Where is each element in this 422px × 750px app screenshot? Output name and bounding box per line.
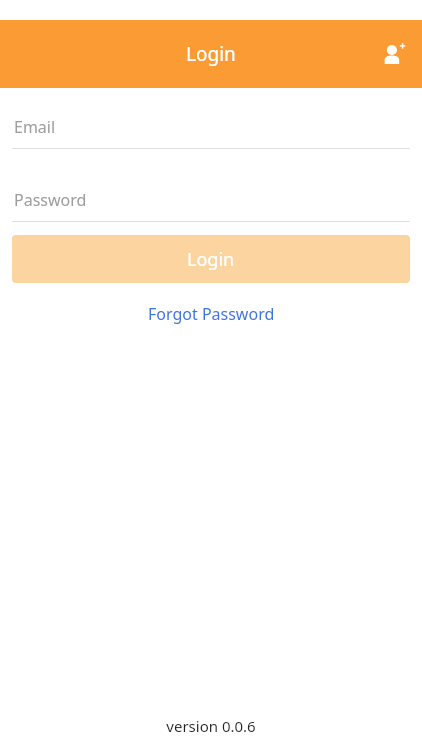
staticText: Login: [187, 247, 235, 272]
button[interactable]: Forgot Password: [138, 299, 285, 329]
button[interactable]: Email: [0, 106, 422, 148]
staticText: Login: [186, 41, 236, 67]
button[interactable]: Login: [12, 235, 410, 283]
button[interactable]: Password: [0, 179, 422, 221]
staticText: Forgot Password: [148, 303, 275, 325]
staticText: version 0.0.6: [0, 716, 422, 736]
staticText: Password: [14, 189, 87, 211]
button[interactable]: Add account: [372, 32, 416, 76]
staticText: Email: [14, 116, 56, 138]
